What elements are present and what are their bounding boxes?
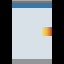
button[interactable]: Action [42, 27, 52, 36]
